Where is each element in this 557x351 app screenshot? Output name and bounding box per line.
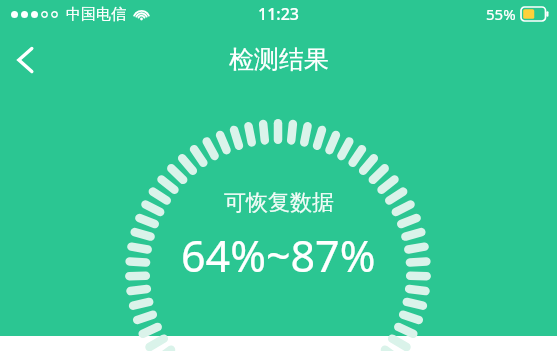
staticText: 64%~87% — [181, 226, 376, 285]
staticText: 55% — [486, 4, 516, 24]
button[interactable]: Back — [3, 36, 51, 84]
staticText: 11:23 — [258, 3, 299, 25]
staticText: 检测结果 — [229, 44, 329, 75]
staticText: 可恢复数据 — [224, 189, 334, 217]
staticText: 中国电信 — [66, 5, 126, 24]
